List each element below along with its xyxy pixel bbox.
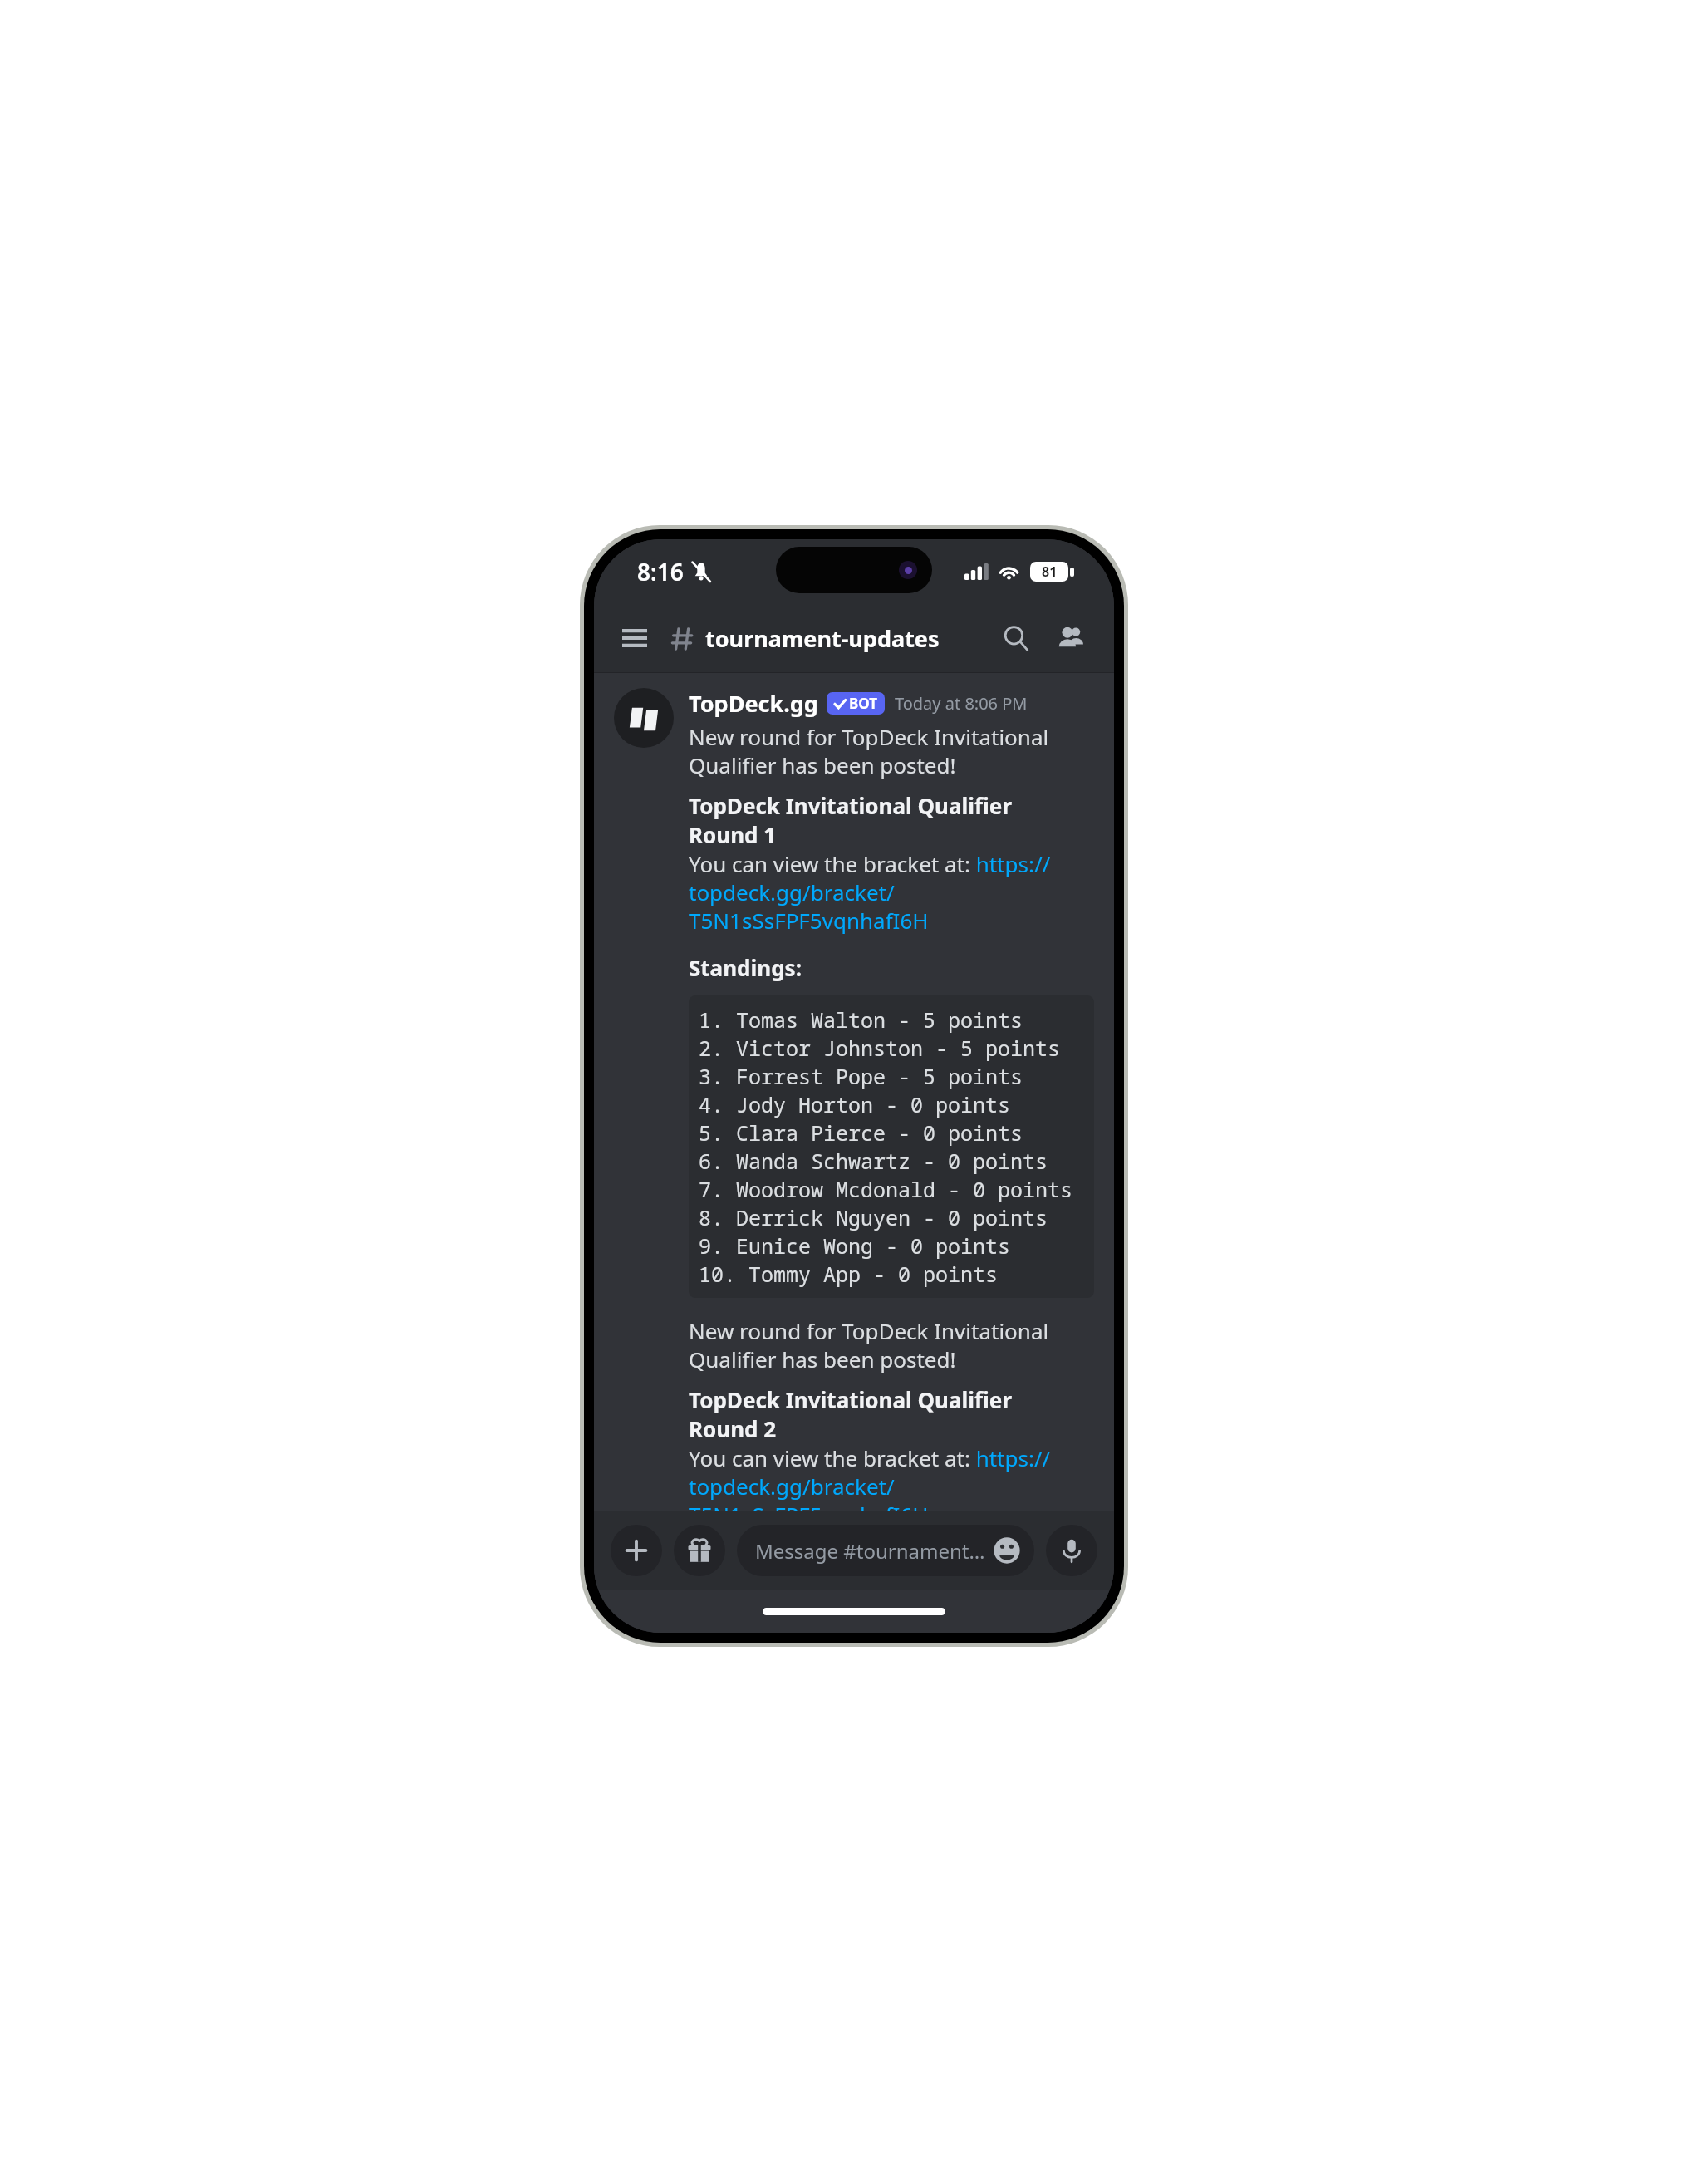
staticText: 7. Woodrow Mcdonald - 0 points: [699, 1175, 1073, 1203]
button[interactable]: You can view the bracket at: https://top…: [689, 849, 1094, 935]
staticText: 6. Wanda Schwartz - 0 points: [699, 1147, 1048, 1175]
staticText: 2. Victor Johnston - 5 points: [699, 1034, 1061, 1062]
staticText: 4. Jody Horton - 0 points: [699, 1090, 1011, 1118]
button[interactable]: Message #tournament-u…: [737, 1525, 1034, 1576]
staticText: TopDeck.gg: [689, 688, 818, 719]
staticText: 10. Tommy App - 0 points: [699, 1260, 999, 1288]
button[interactable]: TopDeck.gg avatar: [614, 688, 674, 748]
button[interactable]: Add attachment: [611, 1525, 662, 1576]
staticText: TopDeck Invitational Qualifier: [689, 791, 1013, 820]
staticText: Standings:: [689, 953, 802, 982]
button[interactable]: Open navigation menu: [616, 619, 654, 657]
staticText: 5. Clara Pierce - 0 points: [699, 1118, 1023, 1147]
button[interactable]: Search: [994, 617, 1038, 660]
button[interactable]: tournament-updates: [670, 623, 994, 654]
staticText: 1. Tomas Walton - 5 points: [699, 1005, 1023, 1034]
staticText: Message #tournament-u…: [755, 1537, 986, 1565]
staticText: 3. Forrest Pope - 5 points: [699, 1062, 1023, 1090]
staticText: BOT: [849, 694, 878, 713]
staticText: New round for TopDeck Invitational Quali…: [689, 1316, 1094, 1373]
staticText: TopDeck Invitational Qualifier: [689, 1385, 1013, 1414]
button[interactable]: Members: [1049, 617, 1092, 660]
staticText: New round for TopDeck Invitational Quali…: [689, 722, 1094, 779]
staticText: 81: [1042, 563, 1058, 581]
staticText: tournament-updates: [705, 623, 940, 654]
button[interactable]: Voice message: [1046, 1525, 1097, 1576]
staticText: Round 2: [689, 1414, 777, 1443]
button[interactable]: You can view the bracket at: https://top…: [689, 1443, 1094, 1511]
staticText: Today at 8:06 PM: [895, 692, 1028, 715]
staticText: 8:16: [637, 556, 684, 587]
staticText: 9. Eunice Wong - 0 points: [699, 1231, 1011, 1260]
button[interactable]: Send a gift: [674, 1525, 725, 1576]
staticText: Round 1: [689, 820, 777, 849]
staticText: 8. Derrick Nguyen - 0 points: [699, 1203, 1048, 1231]
